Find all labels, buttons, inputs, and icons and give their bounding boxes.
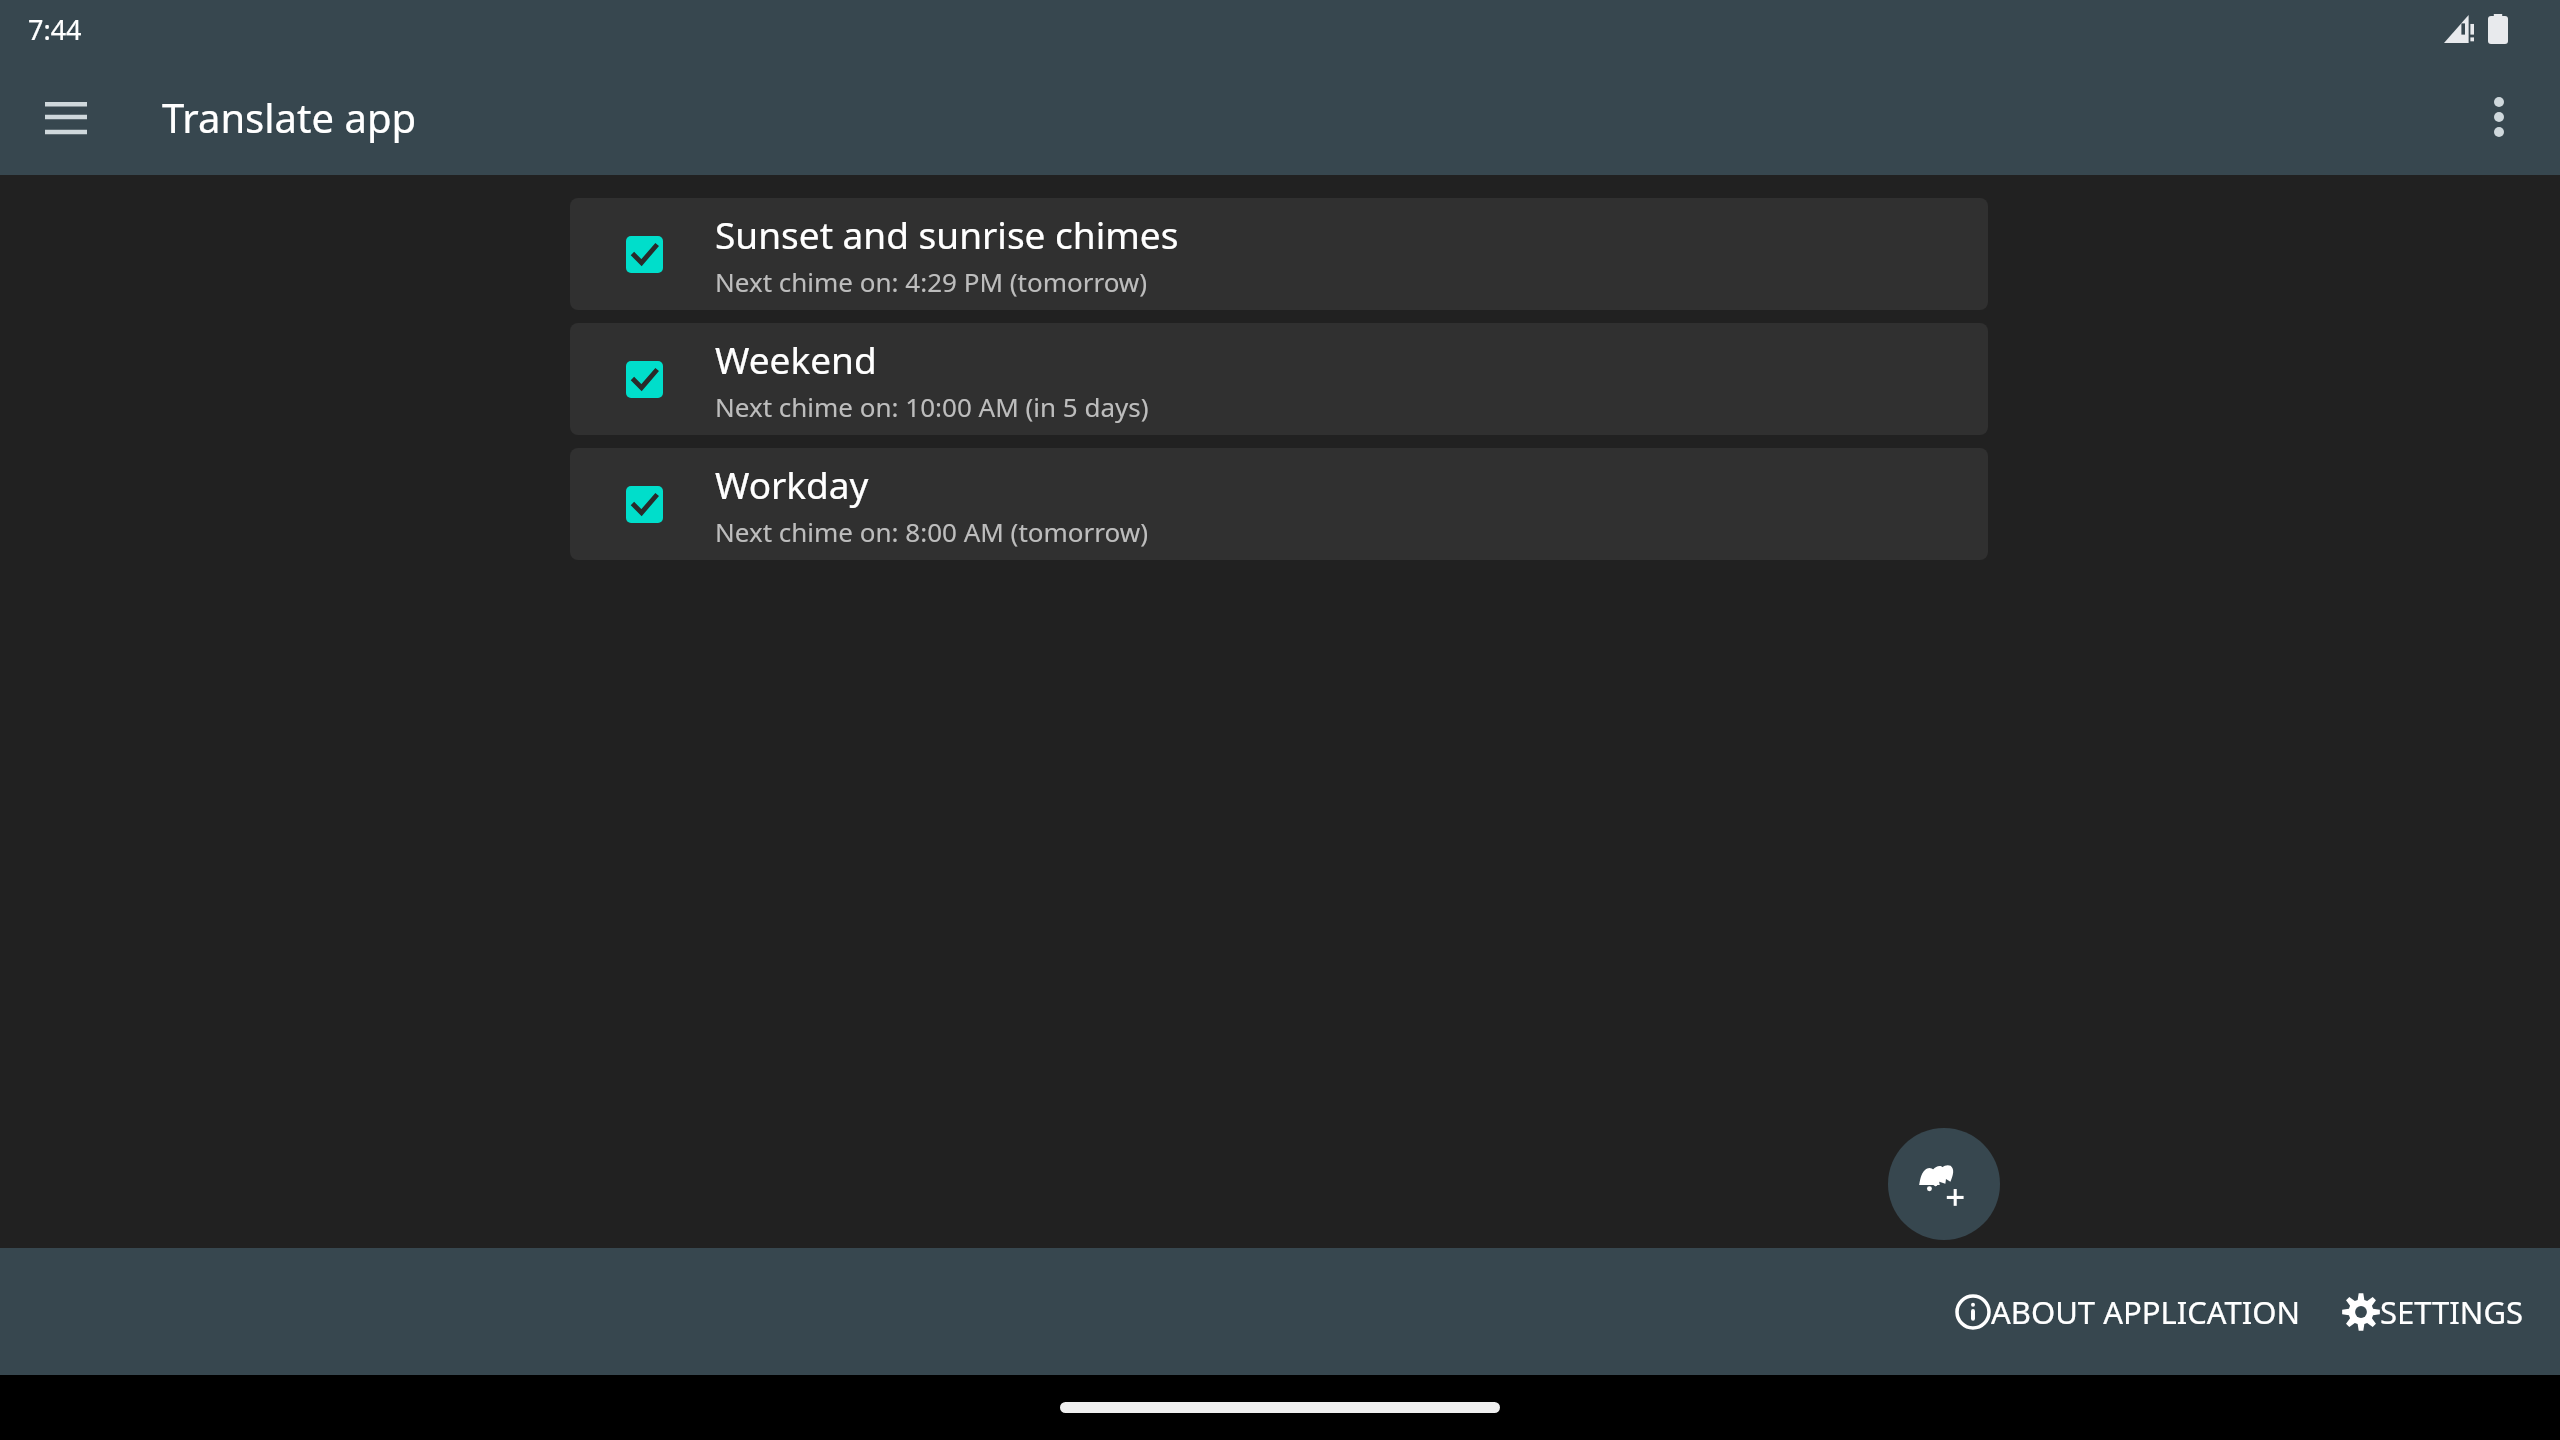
button[interactable]: Toggle Sunset and sunrise chimes [570, 198, 1988, 310]
button[interactable]: Toggle Weekend [626, 361, 663, 398]
staticText: Next chime on: 10:00 AM (in 5 days) [715, 389, 1149, 424]
button[interactable]: More options [2468, 86, 2530, 148]
button[interactable]: Toggle Workday [626, 486, 663, 523]
staticText: Weekend [715, 334, 877, 384]
button[interactable]: ABOUT APPLICATION [1949, 1277, 2306, 1347]
staticText: Next chime on: 8:00 AM (tomorrow) [715, 514, 1148, 549]
staticText: Translate app [162, 90, 417, 144]
staticText: Sunset and sunrise chimes [715, 209, 1179, 259]
button[interactable]: Open navigation menu [36, 87, 96, 147]
staticText: Workday [715, 459, 869, 509]
button[interactable]: Toggle Weekend [570, 323, 1988, 435]
staticText: Next chime on: 4:29 PM (tomorrow) [715, 264, 1148, 299]
button[interactable]: Toggle Workday [570, 448, 1988, 560]
staticText: ABOUT APPLICATION [1991, 1291, 2300, 1333]
staticText: SETTINGS [2380, 1291, 2524, 1333]
button[interactable]: SETTINGS [2336, 1277, 2530, 1347]
button[interactable]: Toggle Sunset and sunrise chimes [626, 236, 663, 273]
staticText: 7:44 [28, 11, 82, 48]
button[interactable]: Add chime [1888, 1128, 2000, 1240]
